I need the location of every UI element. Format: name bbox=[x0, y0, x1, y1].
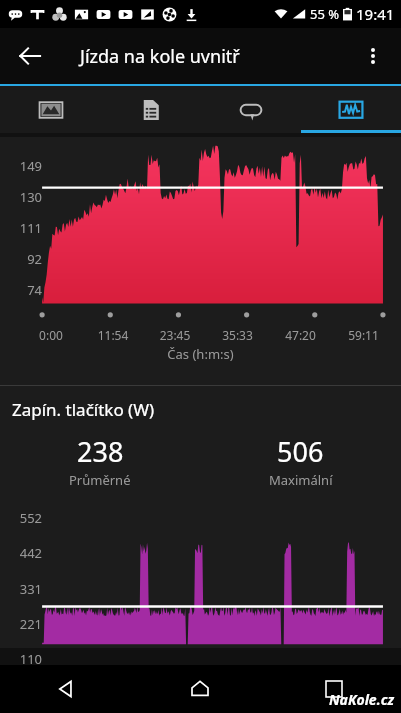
staticText: 442 bbox=[8, 544, 42, 562]
staticText: Průměrné bbox=[69, 471, 131, 489]
staticText: 0:00 bbox=[20, 327, 82, 343]
staticText: Zapín. tlačítko (W) bbox=[12, 398, 155, 421]
staticText: 221 bbox=[8, 615, 42, 633]
button[interactable]: Back bbox=[6, 32, 54, 80]
staticText: 552 bbox=[8, 509, 42, 527]
button[interactable]: Charts bbox=[301, 86, 401, 133]
staticText: 59:11 bbox=[332, 327, 395, 343]
staticText: 111 bbox=[10, 219, 42, 237]
staticText: 35:33 bbox=[206, 327, 269, 343]
staticText: 23:45 bbox=[144, 327, 206, 343]
staticText: Jízda na kole uvnitř bbox=[80, 44, 240, 69]
button[interactable]: Map bbox=[0, 86, 101, 133]
staticText: 74 bbox=[10, 281, 42, 299]
staticText: 47:20 bbox=[269, 327, 332, 343]
staticText: 130 bbox=[10, 188, 42, 206]
staticText: 55 % bbox=[310, 5, 340, 23]
button[interactable]: 149 bbox=[0, 137, 401, 385]
staticText: 506 bbox=[277, 433, 324, 470]
staticText: 149 bbox=[10, 157, 42, 175]
button[interactable]: More options bbox=[349, 32, 397, 80]
staticText: 331 bbox=[8, 580, 42, 598]
button[interactable]: 506 bbox=[200, 433, 401, 489]
staticText: 110 bbox=[8, 650, 42, 668]
staticText: 92 bbox=[10, 250, 42, 268]
staticText: 238 bbox=[77, 433, 124, 470]
staticText: 19:41 bbox=[356, 4, 395, 24]
button[interactable]: 238 bbox=[0, 433, 200, 489]
button[interactable]: Recents bbox=[267, 665, 401, 713]
staticText: 11:54 bbox=[82, 327, 144, 343]
button[interactable]: Details bbox=[101, 86, 201, 133]
staticText: NaKole.cz bbox=[329, 690, 395, 709]
button[interactable]: Zapín. tlačítko (W) bbox=[0, 386, 401, 648]
staticText: Čas (h:m:s) bbox=[0, 345, 401, 363]
button[interactable]: Home bbox=[133, 665, 267, 713]
button[interactable]: Back bbox=[0, 665, 133, 713]
button[interactable]: Laps bbox=[201, 86, 301, 133]
staticText: Maximální bbox=[269, 471, 333, 489]
